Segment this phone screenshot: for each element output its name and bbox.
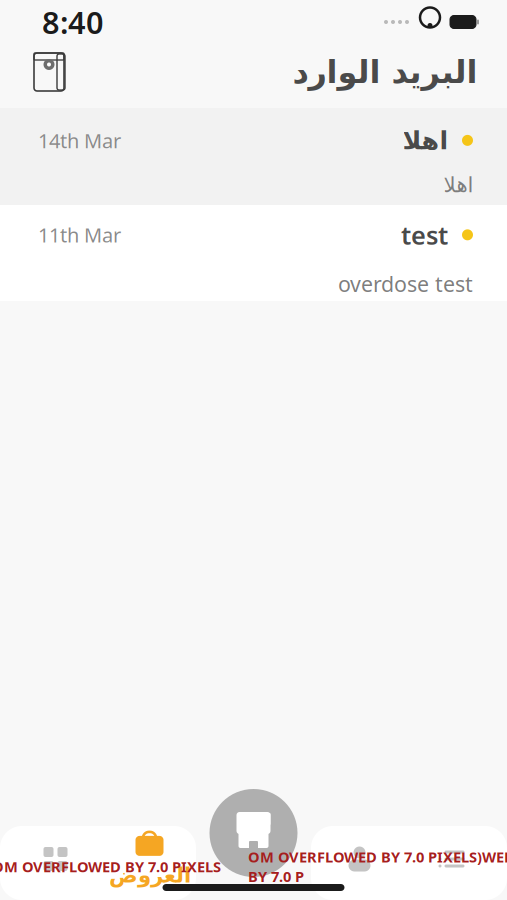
button[interactable]: 11th Mar bbox=[0, 205, 507, 301]
staticText: العروض bbox=[108, 863, 190, 887]
button[interactable]: العروض bbox=[101, 822, 197, 896]
button[interactable]: Store bbox=[26, 48, 72, 96]
staticText: OM OVERFLOWED BY 7.0 PIXELS)WED BY 7.0 P bbox=[248, 847, 507, 886]
button[interactable]: Orders bbox=[405, 822, 497, 896]
staticText: 8:40 bbox=[42, 2, 104, 42]
button[interactable]: Categories bbox=[9, 822, 101, 896]
button[interactable]: Profile bbox=[313, 822, 405, 896]
staticText: OM OVERFLOWED BY 7.0 PIXELS bbox=[0, 857, 221, 876]
staticText: اهلا bbox=[402, 126, 448, 155]
staticText: البريد الوارد bbox=[292, 54, 477, 90]
button[interactable]: Home bbox=[205, 785, 301, 881]
staticText: 14th Mar bbox=[38, 127, 121, 154]
staticText: test bbox=[401, 218, 448, 252]
staticText: 11th Mar bbox=[38, 222, 121, 248]
button[interactable]: 14th Mar bbox=[0, 108, 507, 205]
staticText: اهلا bbox=[443, 173, 473, 197]
staticText: overdose test bbox=[338, 270, 473, 298]
